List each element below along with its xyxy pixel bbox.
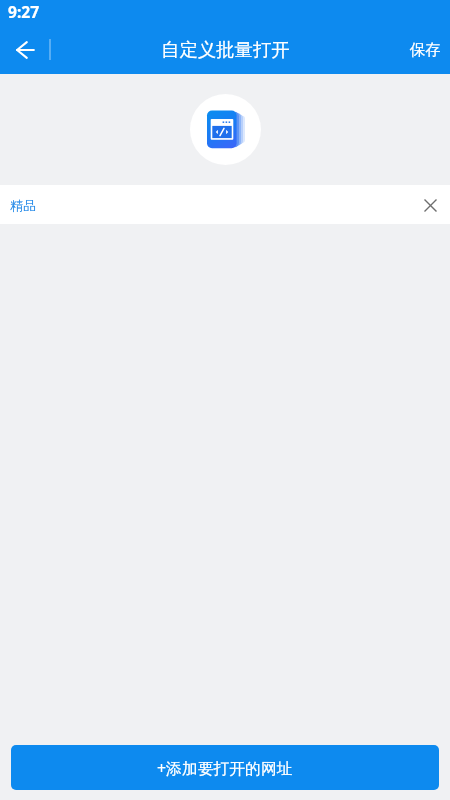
button[interactable]: +添加要打开的网址: [11, 745, 439, 790]
staticText: 9:27: [8, 1, 40, 22]
button[interactable]: Back: [0, 26, 49, 73]
staticText: +添加要打开的网址: [157, 757, 293, 779]
button[interactable]: 精品: [0, 185, 450, 224]
staticText: 保存: [410, 40, 441, 59]
button[interactable]: Close: [415, 190, 445, 220]
staticText: 精品: [10, 197, 36, 213]
button[interactable]: 保存: [396, 30, 450, 69]
staticText: 自定义批量打开: [161, 38, 290, 61]
